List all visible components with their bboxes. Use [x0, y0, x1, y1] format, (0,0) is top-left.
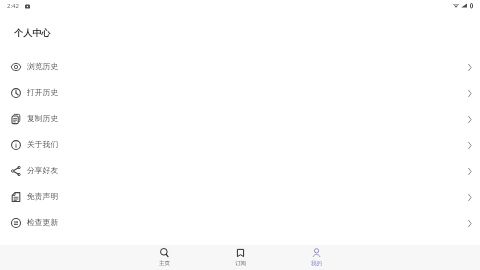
staticText: 订阅: [235, 260, 246, 267]
staticText: 主页: [159, 260, 170, 267]
staticText: 复制历史: [27, 113, 59, 123]
staticText: 关于我们: [27, 139, 59, 149]
staticText: 免责声明: [27, 191, 59, 201]
button[interactable]: 复制历史: [0, 106, 480, 132]
staticText: 2:42: [7, 2, 19, 10]
other: 我的: [311, 248, 322, 258]
button[interactable]: 分享好友: [0, 158, 480, 184]
other: 订阅: [235, 248, 246, 258]
button[interactable]: 免责声明: [0, 184, 480, 210]
button[interactable]: 订阅: [202, 245, 278, 270]
button[interactable]: 浏览历史: [0, 54, 480, 80]
button[interactable]: 检查更新: [0, 210, 480, 236]
staticText: 分享好友: [27, 165, 59, 175]
other: 主页: [159, 248, 170, 258]
staticText: 我的: [311, 260, 322, 267]
button[interactable]: 主页: [126, 245, 202, 270]
staticText: 个人中心: [14, 27, 51, 38]
button[interactable]: 打开历史: [0, 80, 480, 106]
button[interactable]: 我的: [278, 245, 354, 270]
button[interactable]: 关于我们: [0, 132, 480, 158]
staticText: 浏览历史: [27, 61, 59, 71]
staticText: 检查更新: [27, 217, 59, 227]
staticText: 打开历史: [27, 87, 59, 97]
